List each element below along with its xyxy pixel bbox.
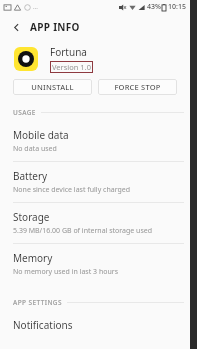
staticText: 43% xyxy=(147,2,161,12)
staticText: Mobile data xyxy=(13,128,69,142)
staticText: UNINSTALL xyxy=(31,82,74,92)
button[interactable]: Mobile data xyxy=(0,121,190,162)
staticText: Storage xyxy=(13,210,50,224)
staticText: No memory used in last 3 hours xyxy=(13,267,119,277)
staticText: APP SETTINGS xyxy=(13,298,62,307)
staticText: 10:15 xyxy=(168,2,186,12)
button[interactable]: Memory xyxy=(0,244,190,284)
button[interactable]: Battery xyxy=(0,162,190,203)
staticText: USAGE xyxy=(13,108,36,117)
staticText: No data used xyxy=(13,144,57,154)
button[interactable]: Storage xyxy=(0,203,190,244)
staticText: ... xyxy=(33,3,38,11)
button[interactable]: Notifications xyxy=(0,311,190,339)
button[interactable]: UNINSTALL xyxy=(13,79,92,95)
staticText: Battery xyxy=(13,169,48,183)
staticText: FORCE STOP xyxy=(114,82,161,92)
staticText: 5.39 MB/16.00 GB of internal storage use… xyxy=(13,226,153,236)
button[interactable]: Back xyxy=(7,18,25,36)
staticText: Version 1.0 xyxy=(52,62,91,72)
button[interactable]: FORCE STOP xyxy=(98,79,177,95)
staticText: Memory xyxy=(13,251,53,265)
staticText: APP INFO xyxy=(30,20,80,34)
staticText: Fortuna xyxy=(50,45,87,59)
button[interactable]: Fortuna xyxy=(0,39,190,79)
staticText: Notifications xyxy=(13,318,73,332)
staticText: None since device last fully charged xyxy=(13,185,131,195)
